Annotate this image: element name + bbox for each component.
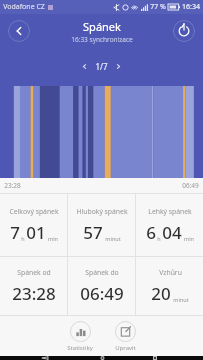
staticText: 16:34 [182,2,200,12]
button[interactable]: 1/7 [81,61,122,72]
staticText: min [184,235,194,242]
staticText: 23:28 [4,181,21,190]
staticText: min [48,235,58,242]
button[interactable]: Sync [173,20,195,42]
button[interactable]: Recent apps [146,356,170,360]
button[interactable]: Lehký spánek [136,194,203,256]
staticText: Upravit [115,344,136,352]
button[interactable]: Back [33,356,57,360]
staticText: minut [105,235,121,242]
staticText: 6 [146,221,156,244]
staticText: Statistiky [67,344,93,352]
button[interactable]: Home [90,356,114,360]
button[interactable]: Statistiky [63,319,97,354]
button[interactable]: Spánek do [68,257,135,315]
staticText: 06:49 [80,282,124,305]
staticText: 04 [162,221,182,244]
staticText: Vzhůru [159,268,182,277]
staticText: Hluboký spánek [76,207,128,216]
staticText: 20 [151,282,171,305]
staticText: h [157,235,161,242]
staticText: 1/7 [95,61,108,72]
staticText: Spánek [83,19,121,34]
staticText: Celkový spánek [9,207,59,216]
button[interactable]: Celkový spánek [0,194,67,256]
staticText: minut [173,296,189,303]
staticText: 01 [26,221,46,244]
button[interactable]: Vzhůru [136,257,203,315]
button[interactable]: Upravit [111,319,140,354]
staticText: Spánek do [85,268,119,277]
staticText: h [21,235,25,242]
staticText: 23:28 [12,282,56,305]
staticText: Spánek od [17,268,51,277]
staticText: 7 [10,221,20,244]
staticText: Lehký spánek [148,207,192,216]
button[interactable]: Spánek od [0,257,67,315]
button[interactable]: Back [8,20,30,42]
staticText: 06:49 [182,181,199,190]
staticText: Vodafone CZ [3,2,45,12]
button[interactable]: Hluboký spánek [68,194,135,256]
staticText: 77 % [150,2,166,12]
staticText: 57 [83,221,103,244]
staticText: 16:33 synchronizace [71,35,133,44]
